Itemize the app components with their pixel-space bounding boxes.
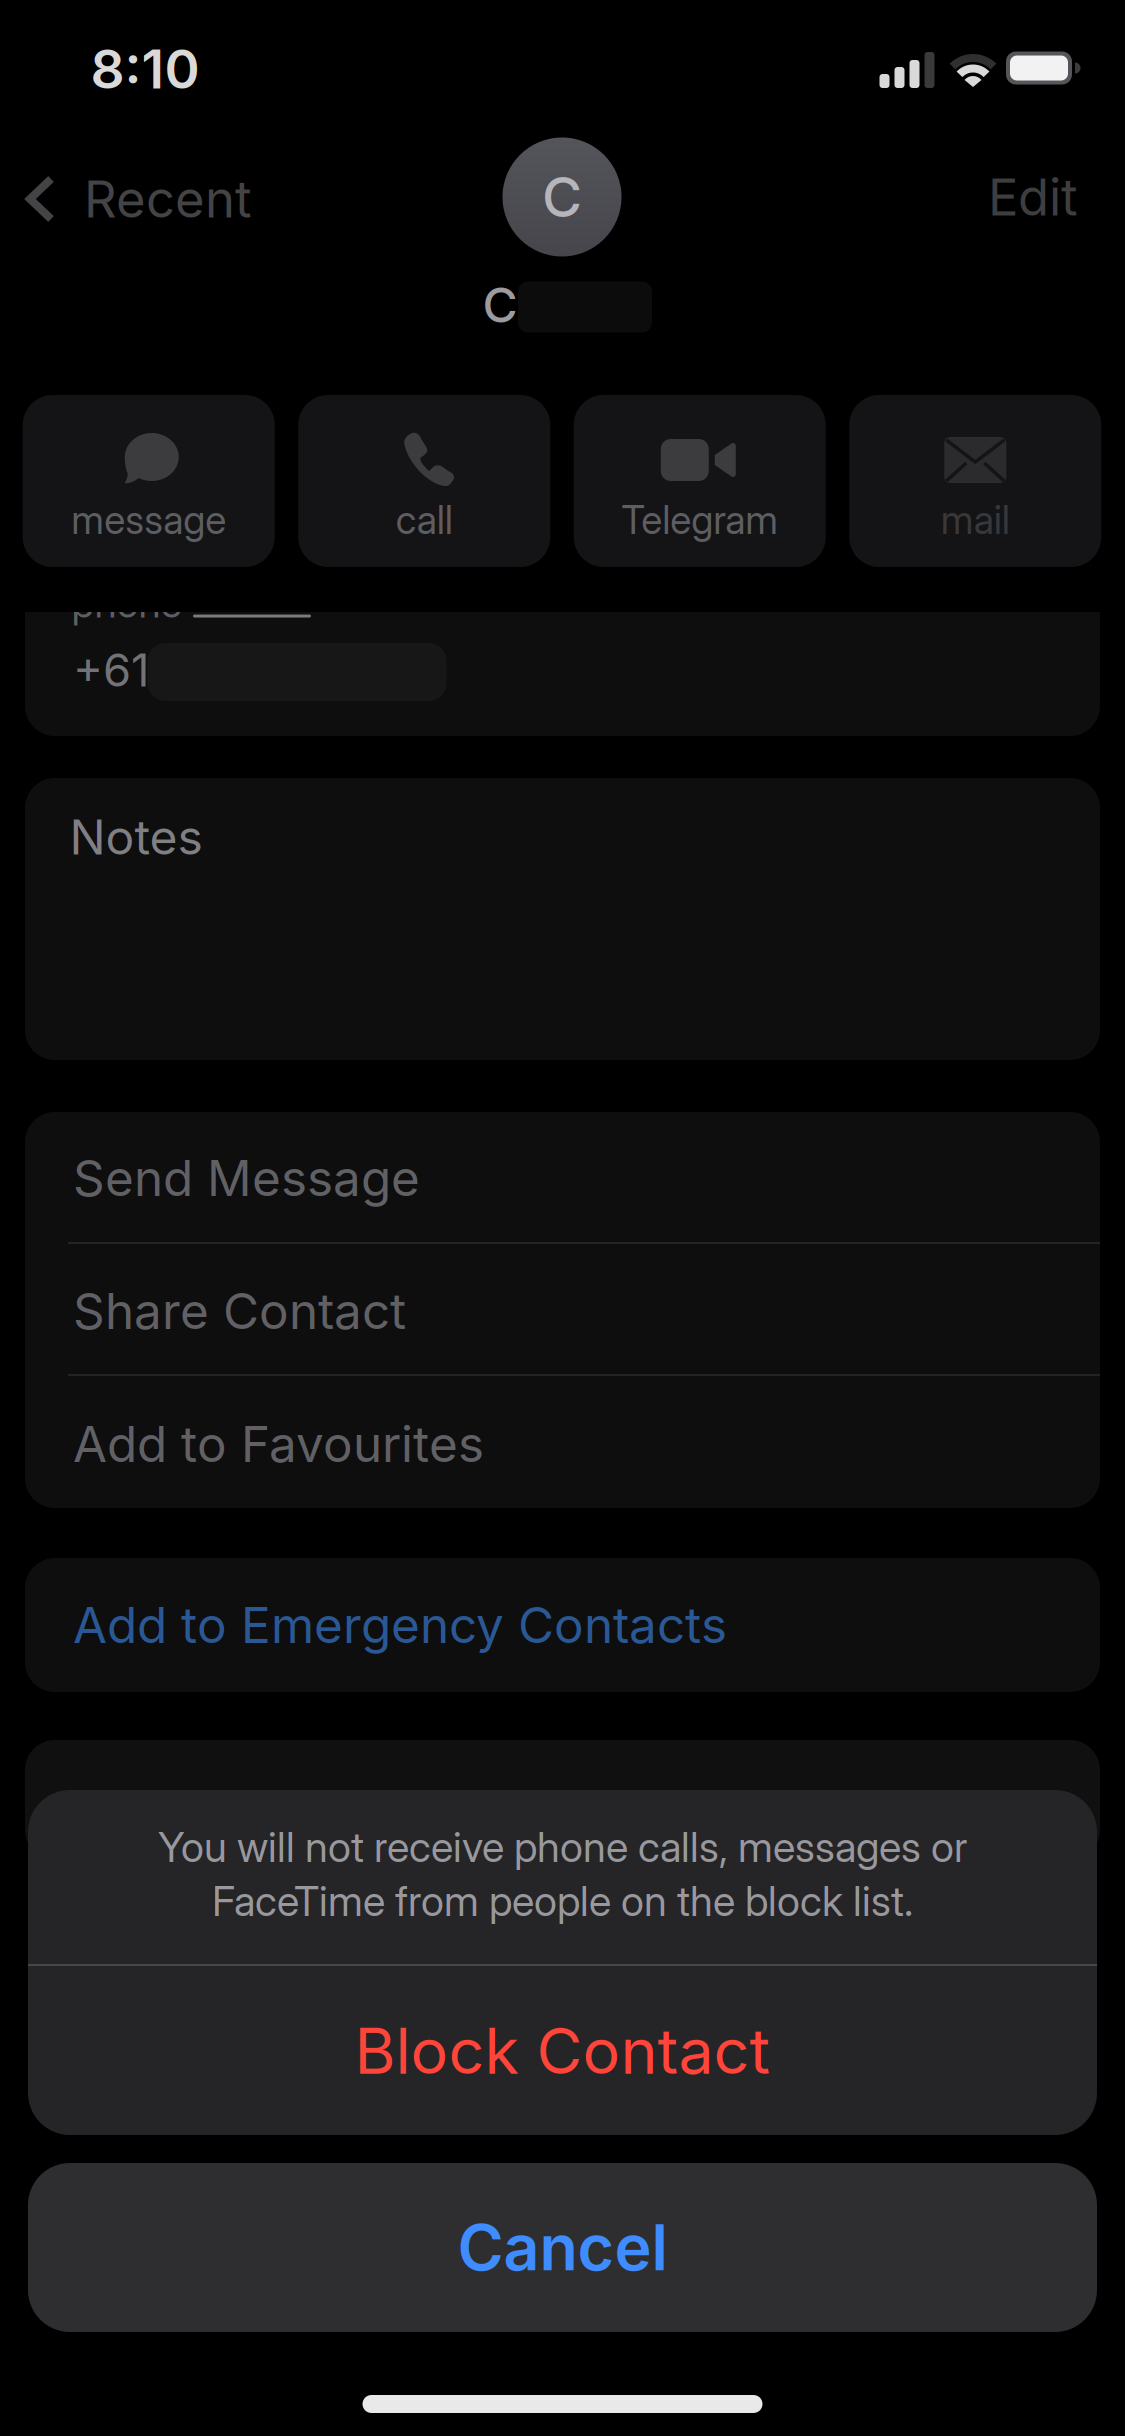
staticText: Edit: [988, 167, 1078, 227]
button[interactable]: mail: [849, 395, 1101, 567]
staticText: 8:10: [90, 37, 199, 100]
staticText: C: [542, 165, 582, 229]
staticText: Share Contact: [73, 1282, 406, 1340]
button[interactable]: Send Message: [73, 1113, 1073, 1243]
button[interactable]: message: [23, 395, 275, 567]
staticText: C: [482, 277, 517, 333]
button[interactable]: Call +61 number: [73, 642, 233, 698]
staticText: Telegram: [621, 497, 778, 543]
staticText: phone: [71, 579, 182, 627]
button[interactable]: Edit: [988, 167, 1078, 227]
staticText: Recent: [84, 169, 252, 229]
staticText: Notes: [69, 809, 202, 865]
button[interactable]: Back to Recents: [26, 167, 276, 231]
button[interactable]: Home: [362, 2395, 762, 2413]
staticText: FaceTime from people on the block list.: [212, 1877, 913, 1925]
staticText: mail: [941, 497, 1010, 543]
staticText: call: [396, 497, 453, 543]
button[interactable]: Share Contact: [73, 1246, 1073, 1376]
staticText: +61: [73, 643, 149, 697]
staticText: Block Contact: [354, 2014, 770, 2088]
button[interactable]: call: [298, 395, 550, 567]
staticText: You will not receive phone calls, messag…: [158, 1823, 967, 1871]
staticText: Add to Favourites: [73, 1415, 484, 1473]
staticText: message: [71, 497, 226, 543]
staticText: Add to Emergency Contacts: [73, 1596, 727, 1654]
button[interactable]: Add to Favourites: [73, 1379, 1073, 1509]
staticText: Send Message: [73, 1149, 420, 1207]
button[interactable]: Block Contact: [28, 1967, 1097, 2135]
button[interactable]: Add to Emergency Contacts: [25, 1558, 1100, 1692]
button[interactable]: Telegram: [574, 395, 826, 567]
staticText: Cancel: [457, 2210, 667, 2284]
button[interactable]: Cancel: [28, 2163, 1097, 2332]
